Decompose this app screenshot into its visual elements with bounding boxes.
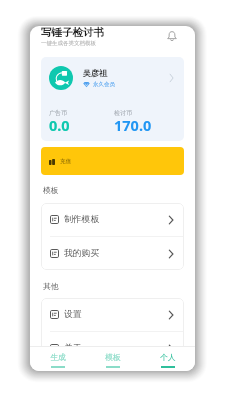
button[interactable]: 我的购买	[41, 237, 184, 270]
staticText: 永久会员	[93, 81, 115, 88]
button[interactable]: 生成	[30, 347, 85, 371]
button[interactable]: 设置	[41, 298, 184, 331]
staticText: 其他	[43, 281, 59, 291]
button[interactable]: 吴彦祖	[41, 57, 184, 141]
button[interactable]: 模板	[85, 347, 140, 371]
staticText: 检讨币	[114, 109, 132, 117]
staticText: 一键生成各类文档模板	[41, 40, 96, 47]
staticText: 我的购买	[64, 248, 100, 259]
staticText: 吴彦祖	[83, 68, 107, 78]
button[interactable]: 关于	[41, 332, 184, 346]
staticText: 写锤子检讨书	[41, 26, 104, 39]
staticText: 制作模板	[64, 214, 100, 225]
staticText: 0.0	[49, 115, 70, 135]
button[interactable]: 个人	[140, 347, 195, 371]
staticText: 关于	[64, 343, 82, 346]
button[interactable]: Notifications	[163, 27, 181, 45]
staticText: 广告币	[49, 109, 67, 117]
button[interactable]: 制作模板	[41, 203, 184, 236]
staticText: 设置	[64, 309, 82, 320]
staticText: 生成	[50, 352, 66, 362]
staticText: 170.0	[114, 115, 152, 135]
staticText: 模板	[105, 352, 121, 362]
staticText: 个人	[160, 352, 176, 362]
button[interactable]: 充值	[41, 147, 184, 175]
staticText: 充值	[60, 158, 71, 165]
staticText: 模板	[43, 185, 59, 195]
